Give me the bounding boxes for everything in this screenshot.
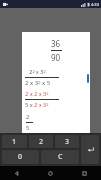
staticText: 2 [26,113,30,121]
staticText: 2 x 2 x 32 [25,90,49,98]
button[interactable]: 3 [55,135,79,148]
button[interactable]: 1 [2,135,27,148]
button[interactable]: 0 [2,150,39,164]
staticText: 36 [51,38,61,49]
staticText: 1 [12,137,17,147]
button[interactable]: Enter [81,135,99,164]
button[interactable]: C [41,150,79,164]
staticText: 0 [18,152,23,162]
staticText: 5 x 2 x 32 [25,101,49,109]
button[interactable]: Back [0,166,33,180]
staticText: 3 [65,137,70,147]
staticText: 4:33 [91,2,99,7]
staticText: 90 [51,52,61,63]
staticText: C [58,152,63,162]
staticText: 2 [39,137,44,147]
staticText: 22 x 32 [29,68,46,76]
button[interactable]: 36 [22,32,90,133]
button[interactable]: Home [33,166,67,180]
button[interactable]: Recent apps [67,166,101,180]
staticText: 2 x 32 x 5 [25,79,51,87]
staticText: 5 [26,124,30,132]
button[interactable]: 2 [29,135,53,148]
